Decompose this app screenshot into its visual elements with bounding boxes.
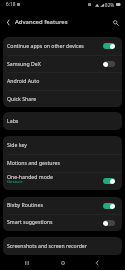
button[interactable]: One-handed mode	[3, 172, 122, 190]
button[interactable]: Continue apps on other devices	[3, 37, 122, 55]
button[interactable]: Navigate up	[1, 16, 14, 29]
staticText: Advanced features	[15, 18, 68, 26]
staticText: Quick Share	[7, 95, 37, 102]
staticText: Android Auto	[7, 77, 40, 84]
staticText: Side key	[7, 141, 27, 148]
staticText: One-handed mode	[7, 173, 53, 180]
button[interactable]: Labs	[3, 112, 122, 130]
staticText: Bixby Routines	[7, 201, 43, 208]
button[interactable]: Side key	[3, 136, 122, 154]
button[interactable]: Samsung DeX	[3, 55, 122, 73]
staticText: Motions and gestures	[7, 159, 61, 166]
staticText: Continue apps on other devices	[7, 42, 84, 49]
staticText: 6:18	[6, 1, 16, 8]
staticText: 82%	[105, 2, 115, 8]
button[interactable]: Android Auto	[3, 72, 122, 90]
button[interactable]: Bixby Routines	[3, 197, 122, 214]
button[interactable]: Screenshots and screen recorder	[3, 237, 122, 255]
staticText: Gesture	[7, 179, 23, 185]
button[interactable]: Recent apps	[20, 256, 34, 270]
button[interactable]: Motions and gestures	[3, 154, 122, 172]
staticText: Smart suggestions	[7, 218, 53, 225]
button[interactable]: Quick Share	[3, 90, 122, 107]
button[interactable]: Search	[109, 16, 122, 29]
staticText: Screenshots and screen recorder	[7, 242, 87, 249]
button[interactable]: Home	[56, 256, 70, 270]
staticText: Labs	[7, 117, 19, 124]
staticText: Samsung DeX	[7, 60, 41, 67]
button[interactable]: Smart suggestions	[3, 214, 122, 231]
button[interactable]: Back	[90, 256, 104, 270]
